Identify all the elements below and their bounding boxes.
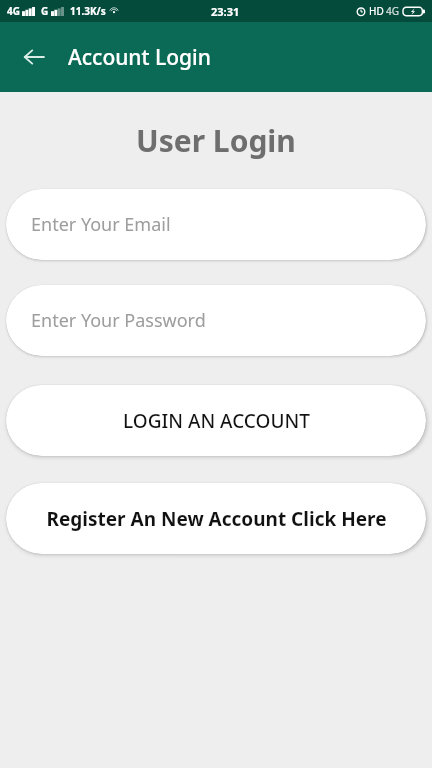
button[interactable]: Enter Your Password <box>6 285 426 356</box>
staticText: 4G <box>7 4 20 18</box>
button[interactable]: Enter Your Email <box>6 189 426 260</box>
staticText: LOGIN AN ACCOUNT <box>123 408 310 434</box>
staticText: Register An New Account Click Here <box>46 506 387 532</box>
staticText: 11.3K/s <box>70 4 106 18</box>
staticText: 23:31 <box>211 4 240 19</box>
staticText: Enter Your Email <box>31 212 171 237</box>
staticText: HD <box>369 4 384 18</box>
staticText: 4G <box>386 4 399 18</box>
staticText: G <box>41 4 49 18</box>
button[interactable]: Back <box>12 35 56 79</box>
staticText: User Login <box>136 120 296 161</box>
staticText: Enter Your Password <box>31 308 206 333</box>
button[interactable]: LOGIN AN ACCOUNT <box>6 385 426 456</box>
button[interactable]: Register An New Account Click Here <box>6 483 426 554</box>
staticText: Account Login <box>68 43 211 72</box>
